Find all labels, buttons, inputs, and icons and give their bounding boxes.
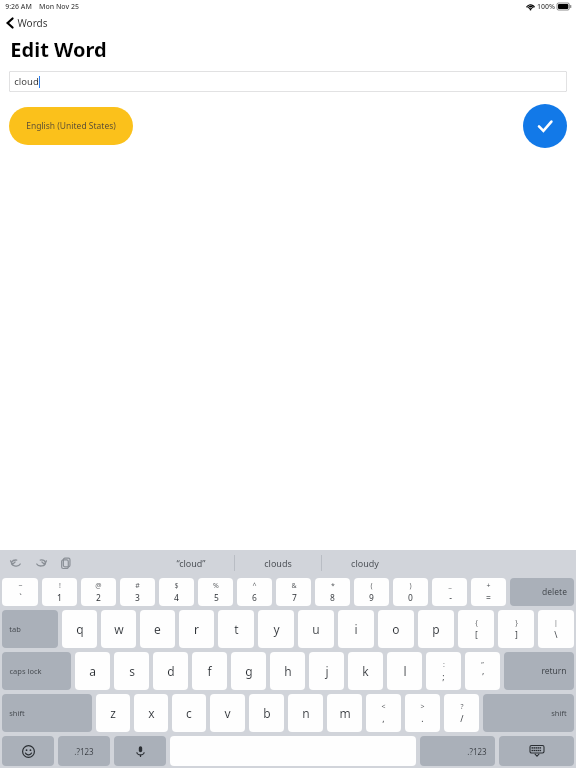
staticText: . xyxy=(421,713,424,725)
button[interactable]: r xyxy=(179,610,214,648)
button[interactable]: Undo xyxy=(10,557,22,569)
button[interactable]: c xyxy=(172,694,206,732)
button[interactable]: z xyxy=(96,694,130,732)
button[interactable]: ~ xyxy=(2,578,38,606)
staticText: 9 xyxy=(369,592,374,604)
button[interactable]: tab xyxy=(2,610,58,648)
button[interactable]: a xyxy=(75,652,110,690)
button[interactable]: _ xyxy=(432,578,467,606)
staticText: @ xyxy=(95,581,102,591)
staticText: r xyxy=(194,621,199,637)
button[interactable]: Confirm xyxy=(523,104,567,148)
staticText: 1 xyxy=(57,592,62,604)
staticText: $ xyxy=(174,581,179,591)
button[interactable]: o xyxy=(378,610,414,648)
staticText: % xyxy=(213,581,219,591)
button[interactable]: e xyxy=(140,610,175,648)
button[interactable]: ) xyxy=(393,578,428,606)
button[interactable]: return xyxy=(504,652,574,690)
button[interactable]: t xyxy=(218,610,254,648)
button[interactable]: k xyxy=(348,652,383,690)
staticText: ~ xyxy=(18,581,23,591)
staticText: 2 xyxy=(96,592,101,604)
button[interactable]: Paste xyxy=(60,557,72,569)
staticText: b xyxy=(263,705,271,721)
staticText: ; xyxy=(442,671,445,683)
button[interactable]: # xyxy=(120,578,155,606)
button[interactable]: i xyxy=(338,610,374,648)
button[interactable]: } xyxy=(498,610,534,648)
button[interactable]: v xyxy=(210,694,245,732)
staticText: m xyxy=(339,705,351,721)
button[interactable]: “cloud” xyxy=(148,550,234,576)
button[interactable]: h xyxy=(270,652,305,690)
button[interactable]: delete xyxy=(510,578,574,606)
staticText: 0 xyxy=(408,592,413,604)
button[interactable]: cloudy xyxy=(322,550,408,576)
button[interactable]: Words xyxy=(0,13,576,33)
staticText: clouds xyxy=(264,557,292,569)
button[interactable]: % xyxy=(198,578,233,606)
button[interactable]: n xyxy=(288,694,323,732)
staticText: e xyxy=(154,621,161,637)
button[interactable]: Emoji xyxy=(2,736,54,766)
button[interactable]: g xyxy=(231,652,266,690)
staticText: Words xyxy=(17,16,48,30)
button[interactable]: shift xyxy=(483,694,574,732)
button[interactable]: y xyxy=(258,610,294,648)
button[interactable]: + xyxy=(471,578,506,606)
button[interactable]: @ xyxy=(81,578,116,606)
button[interactable]: shift xyxy=(2,694,92,732)
button[interactable]: & xyxy=(276,578,311,606)
button[interactable]: English (United States) xyxy=(9,107,133,145)
button[interactable]: w xyxy=(101,610,136,648)
button[interactable]: q xyxy=(62,610,97,648)
button[interactable]: | xyxy=(538,610,574,648)
button[interactable]: u xyxy=(298,610,334,648)
button[interactable]: ” xyxy=(465,652,500,690)
button[interactable]: p xyxy=(418,610,454,648)
staticText: * xyxy=(331,581,335,591)
button[interactable]: Dictation xyxy=(114,736,166,766)
staticText: cloudy xyxy=(351,557,379,569)
staticText: shift xyxy=(9,708,25,718)
staticText: _ xyxy=(448,581,452,591)
button[interactable]: * xyxy=(315,578,350,606)
button[interactable]: l xyxy=(387,652,422,690)
staticText: Edit Word xyxy=(10,36,107,63)
staticText: Mon Nov 25 xyxy=(39,2,79,12)
button[interactable]: Redo xyxy=(35,557,47,569)
staticText: 7 xyxy=(292,592,297,604)
button[interactable]: .?123 xyxy=(420,736,495,766)
button[interactable]: f xyxy=(192,652,227,690)
button[interactable]: .?123 xyxy=(58,736,110,766)
button[interactable]: $ xyxy=(159,578,194,606)
button[interactable]: b xyxy=(249,694,284,732)
button[interactable]: { xyxy=(458,610,494,648)
button[interactable]: ( xyxy=(354,578,389,606)
button[interactable]: < xyxy=(366,694,401,732)
staticText: delete xyxy=(542,586,567,598)
button[interactable]: Hide keyboard xyxy=(499,736,574,766)
staticText: < xyxy=(381,702,386,712)
staticText: .?123 xyxy=(467,746,487,757)
button[interactable]: m xyxy=(327,694,362,732)
button[interactable]: caps lock xyxy=(2,652,71,690)
button[interactable]: x xyxy=(134,694,168,732)
staticText: 5 xyxy=(214,592,219,604)
staticText: w xyxy=(114,621,124,637)
staticText: t xyxy=(234,621,239,637)
button[interactable]: ! xyxy=(42,578,77,606)
button[interactable]: j xyxy=(309,652,344,690)
button[interactable]: : xyxy=(426,652,461,690)
button[interactable]: ? xyxy=(444,694,479,732)
button[interactable]: cloud xyxy=(9,71,567,92)
staticText: ^ xyxy=(252,581,257,591)
button[interactable]: ^ xyxy=(237,578,272,606)
button[interactable]: > xyxy=(405,694,440,732)
staticText: tab xyxy=(9,624,21,634)
button[interactable]: d xyxy=(153,652,188,690)
button[interactable]: clouds xyxy=(235,550,321,576)
button[interactable]: s xyxy=(114,652,149,690)
